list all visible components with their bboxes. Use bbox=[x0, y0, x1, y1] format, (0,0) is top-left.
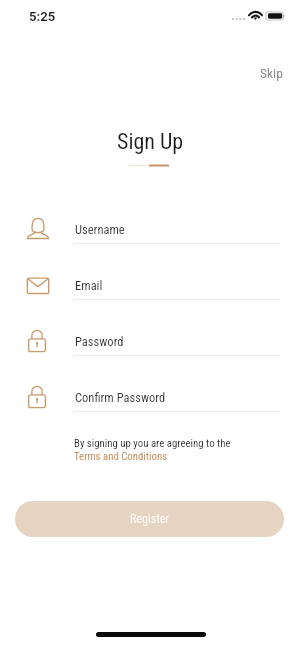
other: Confirm Password bbox=[27, 386, 49, 408]
staticText: Confirm Password bbox=[75, 390, 166, 405]
staticText: 5:25 bbox=[29, 9, 56, 24]
button[interactable]: Register bbox=[15, 501, 284, 537]
button[interactable]: Email bbox=[0, 269, 300, 307]
staticText: Sign Up bbox=[117, 129, 184, 155]
staticText: Register bbox=[130, 512, 169, 526]
button[interactable]: Skip bbox=[252, 59, 291, 87]
staticText: By signing up you are agreeing to the bbox=[74, 437, 231, 450]
other: Email bbox=[27, 274, 49, 296]
staticText: Password bbox=[75, 334, 124, 349]
staticText: Terms and Conditions bbox=[74, 450, 168, 463]
other: Password bbox=[27, 330, 49, 352]
staticText: Skip bbox=[260, 65, 283, 81]
button[interactable]: Password bbox=[0, 325, 300, 363]
button[interactable]: Terms and Conditions bbox=[74, 450, 168, 463]
button[interactable]: Username bbox=[0, 213, 300, 251]
other: Username bbox=[27, 218, 49, 240]
staticText: Email bbox=[75, 278, 103, 293]
button[interactable]: Confirm Password bbox=[0, 381, 300, 419]
staticText: Username bbox=[75, 222, 125, 237]
